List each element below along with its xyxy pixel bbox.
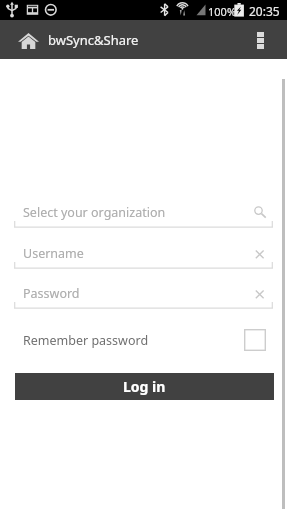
button[interactable]: More options [241,20,287,59]
staticText: bwSync&Share [48,31,139,49]
staticText: 20:35 [249,3,280,19]
button[interactable]: Home [0,20,46,59]
staticText: Remember password [23,332,149,349]
button[interactable]: Log in [15,373,274,400]
button[interactable]: Password [14,287,273,311]
staticText: Username [23,245,84,262]
staticText: Select your organization [23,204,166,221]
button[interactable]: Remember password [14,327,273,353]
button[interactable]: Username [14,247,273,271]
staticText: Password [23,285,80,302]
staticText: 100% [208,4,237,19]
staticText: Log in [123,377,166,396]
button[interactable]: Select your organization [14,206,273,230]
